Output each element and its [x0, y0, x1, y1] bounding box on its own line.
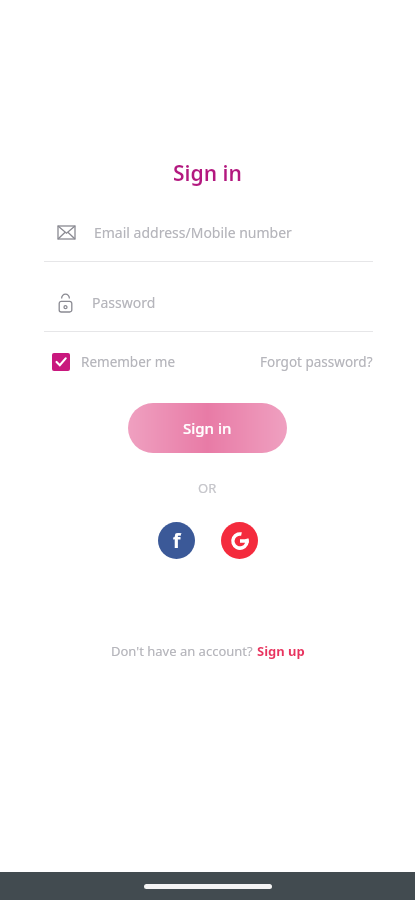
button[interactable]: Forgot password?	[260, 353, 373, 371]
staticText: Remember me	[81, 353, 176, 371]
button[interactable]: Email address field	[0, 217, 415, 262]
button[interactable]: Sign in	[128, 403, 287, 453]
button[interactable]: Password field	[0, 287, 415, 332]
button[interactable]: Sign in with Facebook	[158, 522, 195, 559]
staticText: f	[173, 528, 181, 554]
staticText: Don't have an account?	[111, 642, 257, 660]
button[interactable]: Remember me	[52, 353, 176, 371]
staticText: Sign in	[173, 159, 242, 188]
staticText: Sign in	[183, 418, 232, 438]
staticText: Email address/Mobile number	[94, 223, 292, 242]
staticText: Forgot password?	[260, 353, 373, 371]
button[interactable]: Sign in with Google	[221, 522, 258, 559]
button[interactable]: Sign up	[257, 642, 305, 660]
staticText: Sign up	[257, 642, 305, 660]
staticText: Password	[92, 293, 156, 312]
staticText: OR	[198, 479, 217, 497]
